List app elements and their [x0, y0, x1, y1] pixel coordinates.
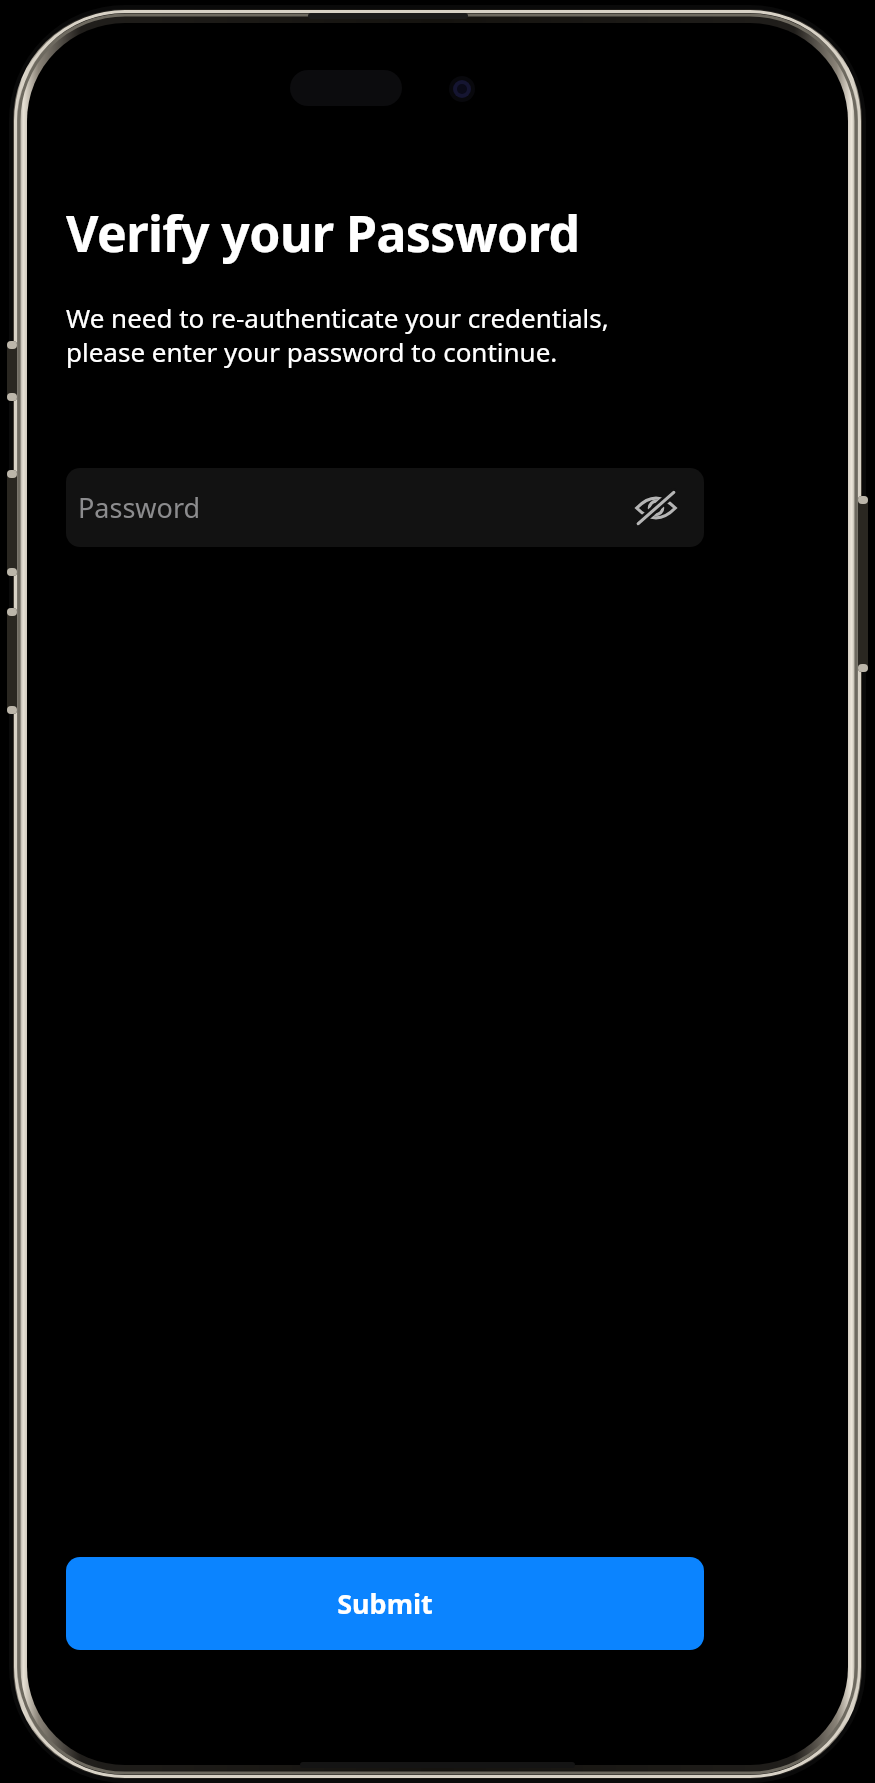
button[interactable]: Show password — [628, 480, 684, 536]
staticText: Verify your Password — [66, 199, 580, 267]
button[interactable]: Submit — [66, 1557, 704, 1650]
staticText: Submit — [337, 1585, 433, 1622]
staticText: We need to re-authenticate your credenti… — [66, 300, 691, 370]
staticText: Password — [78, 489, 201, 526]
button[interactable]: Password — [66, 468, 704, 547]
